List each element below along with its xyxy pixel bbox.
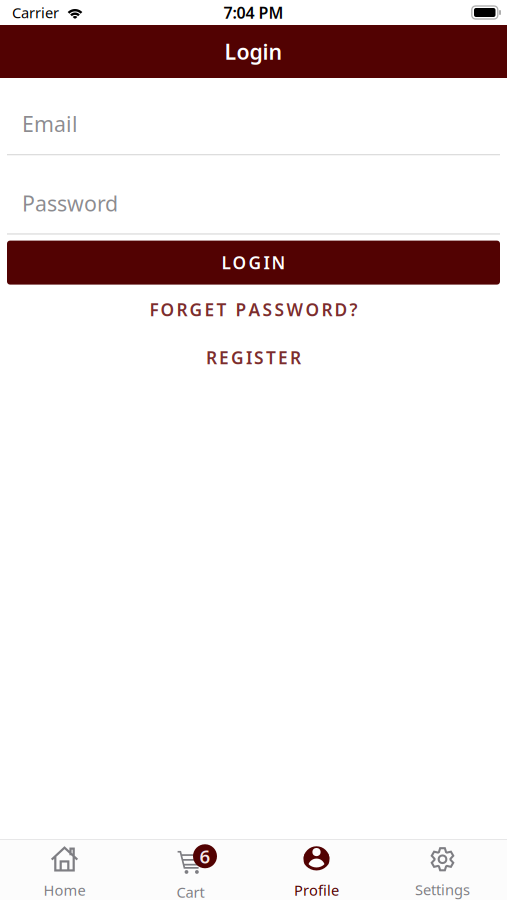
staticText: 7:04 PM <box>223 2 283 23</box>
staticText: Login <box>224 37 282 66</box>
button[interactable]: Settings <box>379 840 505 900</box>
staticText: Email <box>22 110 78 138</box>
staticText: Password <box>22 189 118 217</box>
staticText: 6 <box>199 844 210 869</box>
button[interactable]: L O G I N <box>7 241 500 285</box>
button[interactable]: F O R G E T P A S S W O R D ? <box>7 293 500 327</box>
staticText: Home <box>43 880 85 900</box>
staticText: R E G I S T E R <box>206 346 301 369</box>
button[interactable]: Home <box>1 840 127 900</box>
staticText: Cart <box>176 882 204 900</box>
staticText: Settings <box>415 880 470 899</box>
staticText: Carrier <box>12 3 59 22</box>
button[interactable]: Profile <box>253 840 379 900</box>
staticText: Profile <box>294 880 339 900</box>
button[interactable]: R E G I S T E R <box>7 341 500 375</box>
staticText: L O G I N <box>221 251 285 274</box>
button[interactable]: 6 <box>127 840 253 900</box>
staticText: F O R G E T P A S S W O R D ? <box>149 298 357 321</box>
